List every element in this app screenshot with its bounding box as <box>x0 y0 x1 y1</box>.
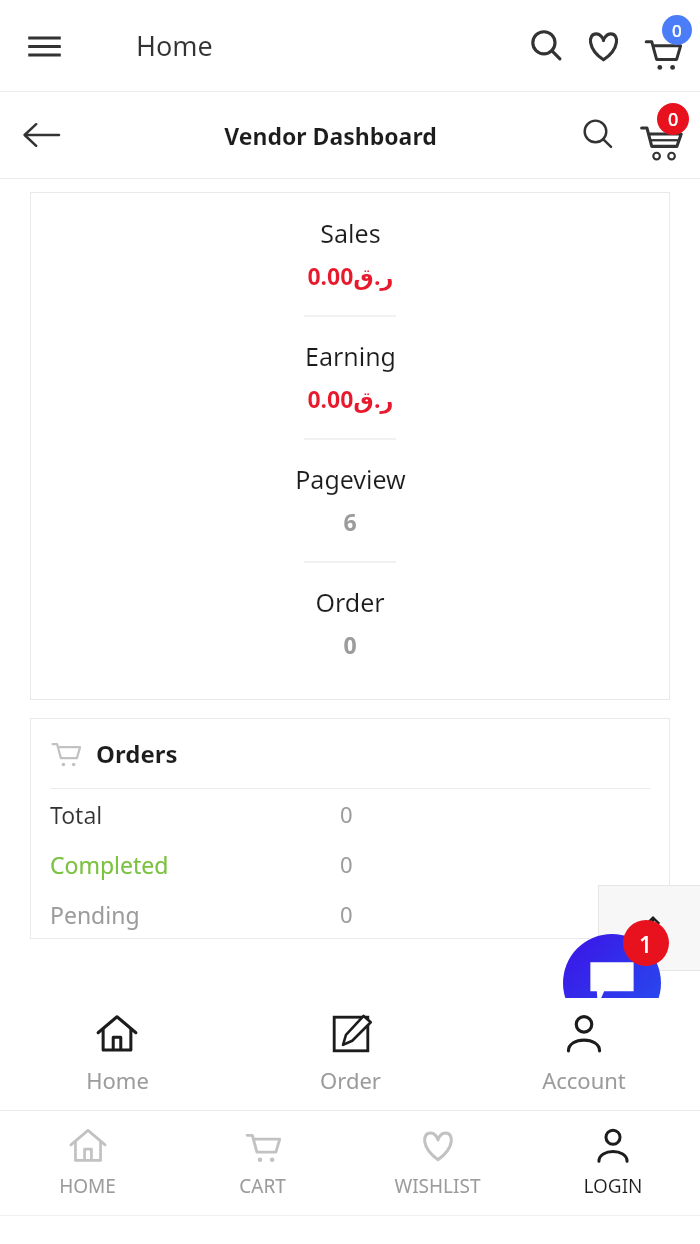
staticText: Pending <box>50 899 140 930</box>
staticText: 0 <box>668 107 679 132</box>
staticText: CART <box>239 1173 286 1199</box>
button[interactable]: WISHLIST <box>350 1119 525 1207</box>
staticText: WISHLIST <box>394 1173 481 1199</box>
staticText: Sales <box>320 216 381 250</box>
staticText: LOGIN <box>583 1173 643 1199</box>
staticText: Pageview <box>295 462 406 496</box>
staticText: Total <box>50 799 103 830</box>
button[interactable]: Wishlist <box>575 18 632 75</box>
button[interactable]: Home <box>0 1003 234 1105</box>
button[interactable]: Open chat <box>563 934 661 1032</box>
staticText: Vendor Dashboard <box>224 120 437 151</box>
staticText: HOME <box>59 1173 116 1199</box>
button[interactable]: Cart, 0 items <box>632 106 690 164</box>
button[interactable]: Account <box>467 1003 700 1105</box>
staticText: ر.ق0.00 <box>307 260 394 291</box>
staticText: Completed <box>50 849 169 880</box>
staticText: 0 <box>340 799 353 829</box>
staticText: ر.ق0.00 <box>307 383 394 414</box>
staticText: Account <box>542 1065 626 1095</box>
staticText: Order <box>320 1065 381 1095</box>
button[interactable]: Scroll to top <box>598 885 700 971</box>
button[interactable]: Cart, 0 items <box>632 15 694 77</box>
staticText: Home <box>136 27 213 64</box>
staticText: Home <box>86 1065 149 1095</box>
staticText: 0 <box>672 19 682 42</box>
staticText: 1 <box>639 928 653 959</box>
staticText: Orders <box>96 737 178 770</box>
staticText: 6 <box>343 506 357 537</box>
button[interactable]: Back <box>12 106 70 164</box>
button[interactable]: Open navigation menu <box>16 18 72 74</box>
button[interactable]: CART <box>175 1119 350 1207</box>
staticText: 0 <box>340 849 353 879</box>
button[interactable]: Search <box>518 18 575 75</box>
staticText: Earning <box>305 339 396 373</box>
staticText: 0 <box>343 629 357 660</box>
button[interactable]: Order <box>234 1003 467 1105</box>
staticText: 0 <box>340 899 353 929</box>
staticText: Order <box>315 585 385 619</box>
button[interactable]: HOME <box>0 1119 175 1207</box>
button[interactable]: LOGIN <box>525 1119 700 1207</box>
button[interactable]: Search <box>570 107 626 163</box>
